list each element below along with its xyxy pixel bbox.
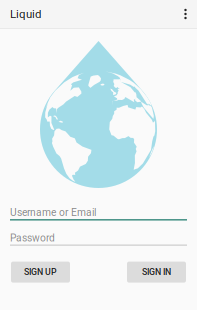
staticText: Password (10, 232, 55, 244)
button[interactable]: More options (174, 0, 197, 28)
staticText: Username or Email (10, 206, 96, 218)
button[interactable]: SIGN IN (127, 262, 186, 283)
staticText: SIGN UP (24, 267, 57, 277)
staticText: Liquid (10, 7, 41, 21)
button[interactable]: SIGN UP (11, 262, 70, 283)
staticText: SIGN IN (142, 267, 171, 277)
